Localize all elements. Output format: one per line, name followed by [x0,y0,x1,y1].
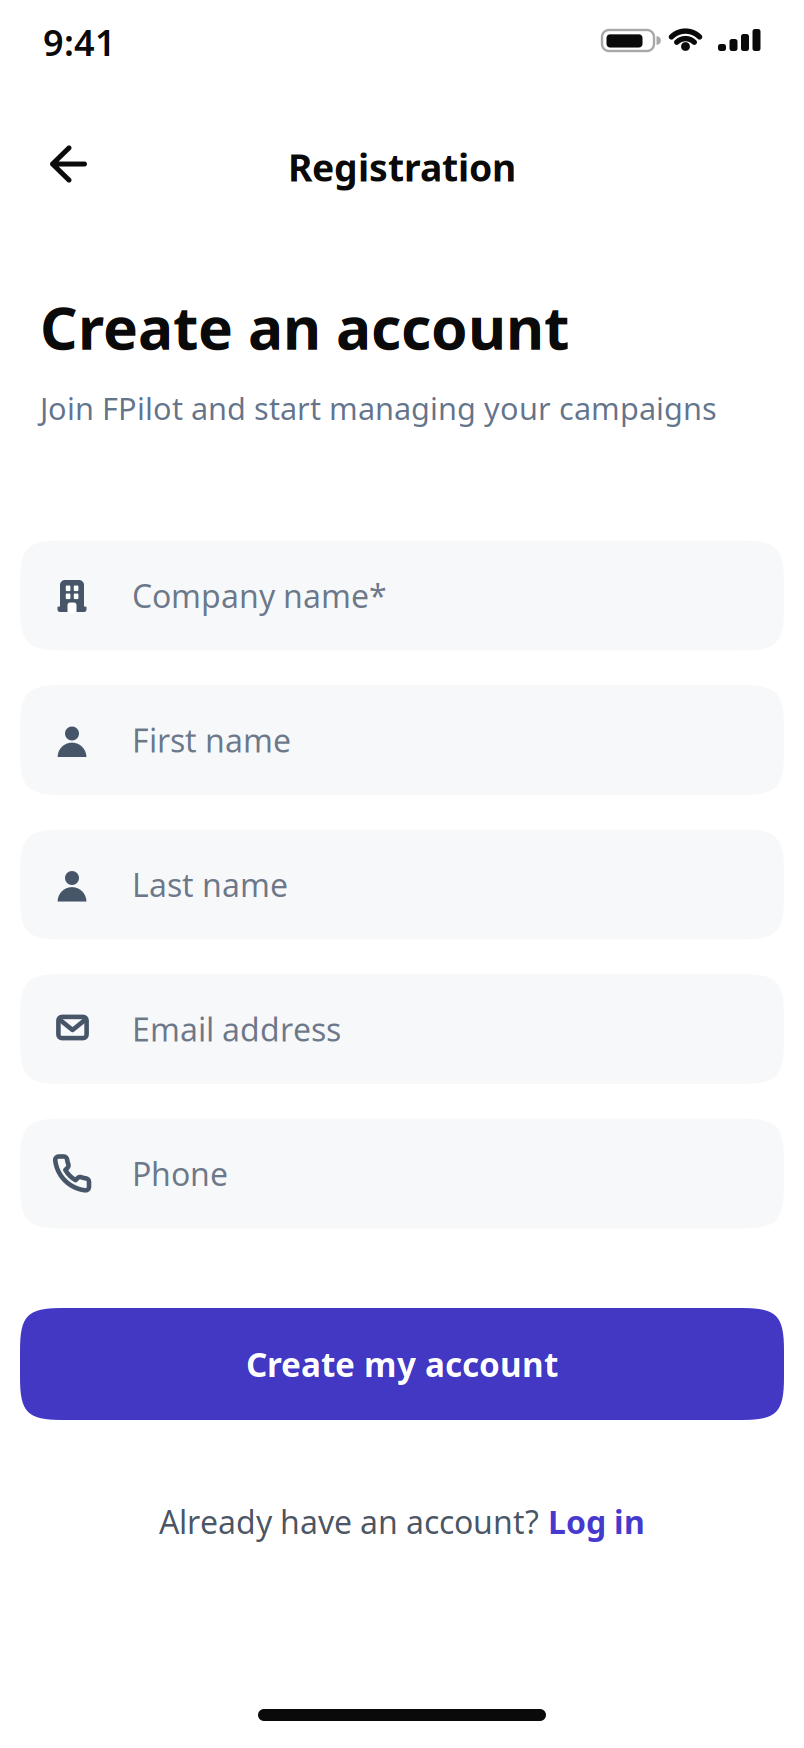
staticText: Join FPilot and start managing your camp… [40,388,717,428]
button[interactable]: First name [20,685,784,795]
staticText: Phone [132,1152,228,1195]
staticText: First name [132,719,291,761]
staticText: Already have an account? [159,1500,539,1543]
staticText: Last name [132,863,288,906]
staticText: Registration [288,142,516,192]
button[interactable]: Create my account [20,1308,784,1420]
button[interactable]: Company name* [20,540,784,650]
staticText: Create my account [246,1342,558,1386]
staticText: Company name* [132,574,387,617]
staticText: Log in [548,1500,645,1543]
button[interactable]: Back [42,136,98,192]
button[interactable]: Phone [20,1118,784,1228]
button[interactable]: Email address [20,974,784,1084]
staticText: Create an account [40,288,569,366]
staticText: 9:41 [43,18,116,66]
staticText: Email address [132,1008,341,1050]
button[interactable]: Last name [20,829,784,939]
button[interactable]: Log in [548,1500,645,1543]
